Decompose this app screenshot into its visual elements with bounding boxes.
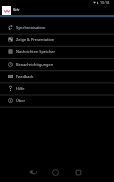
staticText: Feedback — [16, 74, 34, 79]
button[interactable]: Back — [25, 165, 41, 179]
staticText: Zeige & Presentation — [16, 37, 55, 42]
button[interactable]: Hilfe — [0, 83, 114, 95]
staticText: Mehr — [13, 8, 20, 12]
button[interactable]: Zeige & Presentation — [0, 34, 114, 46]
staticText: 10:18 — [100, 0, 110, 5]
staticText: Nachrichten Speicher — [16, 49, 56, 54]
button[interactable]: Synchronisation — [0, 22, 114, 34]
button[interactable]: Feedback — [0, 71, 114, 83]
button[interactable]: Benachrichtigungen — [0, 59, 114, 71]
button[interactable]: Home — [47, 165, 63, 179]
button[interactable]: Recent apps — [70, 165, 86, 179]
button[interactable]: Nachrichten Speicher — [0, 46, 114, 58]
staticText: Synchronisation — [16, 25, 46, 30]
staticText: Benachrichtigungen — [16, 62, 54, 67]
staticText: Hilfe — [16, 86, 25, 91]
button[interactable]: Über — [0, 95, 114, 107]
staticText: Über — [16, 98, 26, 103]
